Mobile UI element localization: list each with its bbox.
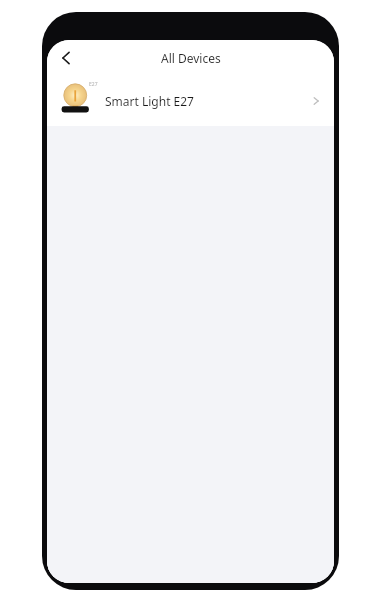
staticText: E27: [89, 81, 98, 88]
button[interactable]: E27: [47, 76, 334, 126]
staticText: Smart Light E27: [105, 93, 194, 109]
staticText: All Devices: [161, 50, 221, 66]
button[interactable]: Back: [53, 45, 79, 71]
